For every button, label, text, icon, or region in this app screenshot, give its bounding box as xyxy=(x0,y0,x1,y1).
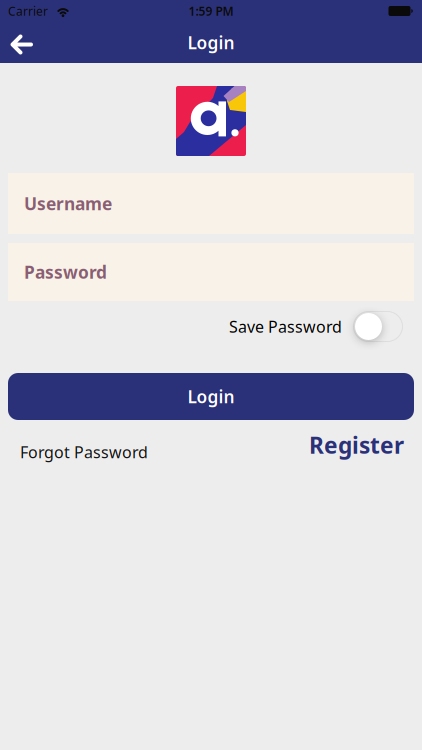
staticText: Password xyxy=(24,260,107,283)
button[interactable]: Save Password xyxy=(353,311,403,342)
button[interactable]: Password xyxy=(8,243,414,301)
button[interactable]: Register xyxy=(309,430,404,460)
button[interactable]: Back xyxy=(0,23,32,62)
button[interactable]: Username xyxy=(8,173,414,234)
staticText: Login xyxy=(187,31,234,54)
staticText: Login xyxy=(187,385,234,408)
staticText: Save Password xyxy=(229,316,342,337)
button[interactable]: Forgot Password xyxy=(20,441,148,463)
staticText: Carrier xyxy=(8,3,48,19)
staticText: Username xyxy=(24,192,112,215)
staticText: Register xyxy=(309,430,404,460)
button[interactable]: Login xyxy=(8,373,414,420)
staticText: Forgot Password xyxy=(20,441,148,463)
staticText: 1:59 PM xyxy=(188,3,233,19)
